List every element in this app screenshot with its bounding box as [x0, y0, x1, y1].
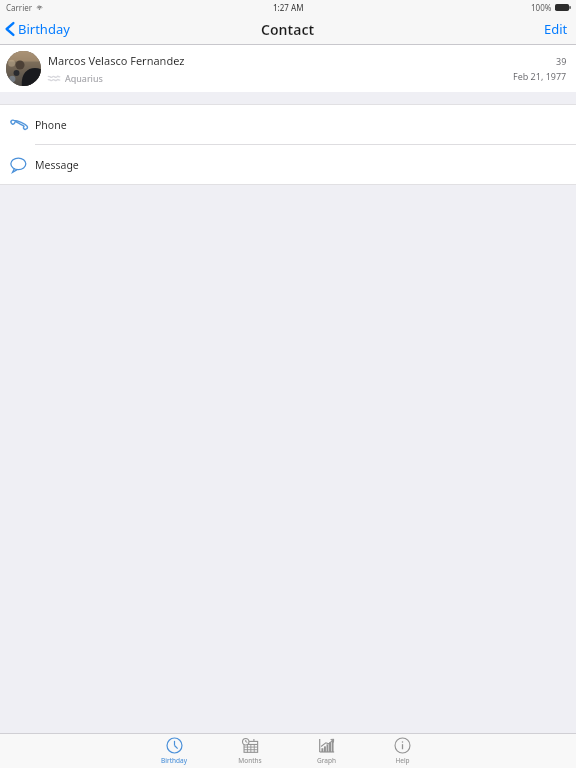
staticText: Birthday	[161, 756, 187, 765]
staticText: 100%	[531, 2, 552, 13]
button[interactable]: Help	[376, 734, 428, 768]
button[interactable]: Marcos Velasco Fernandez	[0, 45, 576, 92]
button[interactable]: Birthday	[0, 14, 78, 44]
button[interactable]: Edit	[536, 14, 576, 44]
staticText: 39	[556, 55, 567, 67]
other: Phone	[10, 116, 27, 133]
staticText: Carrier	[6, 2, 33, 13]
staticText: Edit	[544, 20, 568, 38]
other: Message	[10, 156, 27, 173]
staticText: Help	[395, 756, 410, 765]
staticText: Months	[238, 756, 262, 765]
staticText: Feb 21, 1977	[513, 70, 567, 82]
staticText: Contact	[261, 20, 315, 39]
button[interactable]: Birthday	[148, 734, 200, 768]
staticText: Phone	[35, 118, 67, 132]
staticText: Birthday	[18, 20, 70, 38]
button[interactable]: Graph	[300, 734, 352, 768]
button[interactable]: Message	[0, 145, 576, 184]
button[interactable]: Phone	[0, 105, 576, 144]
staticText: Message	[35, 158, 79, 172]
staticText: Aquarius	[65, 72, 103, 84]
staticText: 1:27 AM	[273, 2, 304, 13]
button[interactable]: Months	[224, 734, 276, 768]
staticText: Marcos Velasco Fernandez	[48, 53, 185, 68]
staticText: Graph	[317, 756, 336, 765]
